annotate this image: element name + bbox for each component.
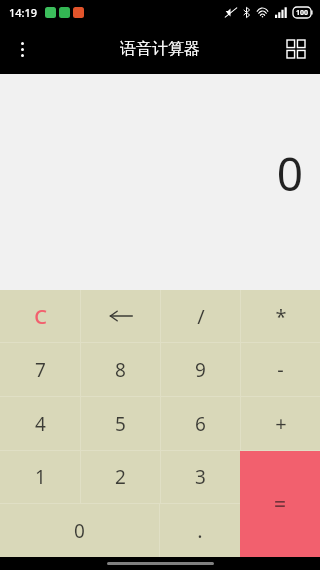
staticText: 2 <box>115 464 126 490</box>
button[interactable]: - <box>241 343 320 396</box>
staticText: + <box>275 410 287 437</box>
button[interactable]: 8 <box>81 343 160 396</box>
staticText: = <box>274 490 287 519</box>
button[interactable]: * <box>241 290 320 342</box>
staticText: 9 <box>195 357 206 383</box>
staticText: / <box>197 303 205 330</box>
staticText: 100 <box>296 8 309 18</box>
button[interactable]: C <box>0 290 80 342</box>
button[interactable]: / <box>161 290 240 342</box>
button[interactable]: 7 <box>0 343 80 396</box>
button[interactable]: 0 <box>0 504 159 557</box>
staticText: 8 <box>115 357 126 383</box>
button[interactable]: More options <box>0 27 44 71</box>
button[interactable]: 5 <box>81 397 160 450</box>
staticText: 1 <box>35 464 46 490</box>
staticText: - <box>277 356 284 383</box>
button[interactable]: 9 <box>161 343 240 396</box>
staticText: 3 <box>195 464 206 490</box>
button[interactable]: 3 <box>161 451 240 503</box>
button[interactable]: + <box>241 397 320 450</box>
staticText: 语音计算器 <box>120 39 200 59</box>
button[interactable]: 4 <box>0 397 80 450</box>
staticText: * <box>275 303 287 330</box>
staticText: . <box>197 517 203 544</box>
button[interactable]: 6 <box>161 397 240 450</box>
staticText: 14:19 <box>9 5 38 20</box>
staticText: 5 <box>115 411 126 437</box>
button[interactable]: . <box>160 504 240 557</box>
staticText: C <box>34 303 47 330</box>
staticText: 6 <box>195 411 206 437</box>
staticText: 0 <box>74 518 85 544</box>
button[interactable]: 1 <box>0 451 80 503</box>
button[interactable]: Grid view <box>272 25 320 73</box>
staticText: 7 <box>35 357 46 383</box>
staticText: 0 <box>276 142 303 205</box>
staticText: 4 <box>35 411 46 437</box>
button[interactable]: = <box>240 451 320 557</box>
button[interactable]: Backspace <box>81 290 160 342</box>
button[interactable]: 2 <box>81 451 160 503</box>
